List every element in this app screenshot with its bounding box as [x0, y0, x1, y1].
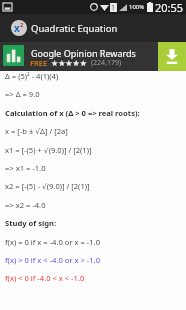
staticText: x2 = [-(5) - √(9.0)] / [2(1)]: [5, 181, 90, 191]
staticText: 1: [111, 3, 116, 12]
staticText: ★★★★★: [51, 59, 87, 68]
staticText: (224,179): [91, 58, 122, 68]
staticText: Study of sign:: [5, 218, 57, 228]
button[interactable]: Download: [158, 42, 186, 71]
staticText: 100%: [129, 3, 145, 11]
staticText: Δ = (5)² - 4(1)(4): [5, 71, 59, 81]
staticText: f(x) < 0 if -4.0 < x < -1.0: [5, 273, 85, 283]
staticText: x = [-b ± √Δ] / [2a]: [5, 126, 68, 136]
staticText: 20:55: [155, 0, 184, 14]
staticText: f(x) > 0 if x < -4.0 or x > -1.0: [5, 255, 100, 265]
staticText: 2: [20, 21, 24, 29]
button[interactable]: x: [0, 14, 186, 42]
staticText: Calculation of x (Δ > 0 => real roots):: [5, 108, 140, 118]
staticText: Quadratic Equation: [31, 22, 118, 35]
staticText: Google Opinion Rewards: [31, 47, 136, 59]
staticText: => Δ = 9.0: [5, 89, 40, 99]
staticText: x1 = [-(5) + √(9.0)] / [2(1)]: [5, 145, 92, 155]
staticText: f(x) = 0 if x = -4.0 or x = -1.0: [5, 237, 100, 247]
staticText: x: [14, 21, 20, 35]
staticText: => x1 = -1.0: [5, 163, 46, 173]
staticText: FREE: [30, 58, 48, 68]
staticText: => x2 = -4.0: [5, 200, 46, 210]
